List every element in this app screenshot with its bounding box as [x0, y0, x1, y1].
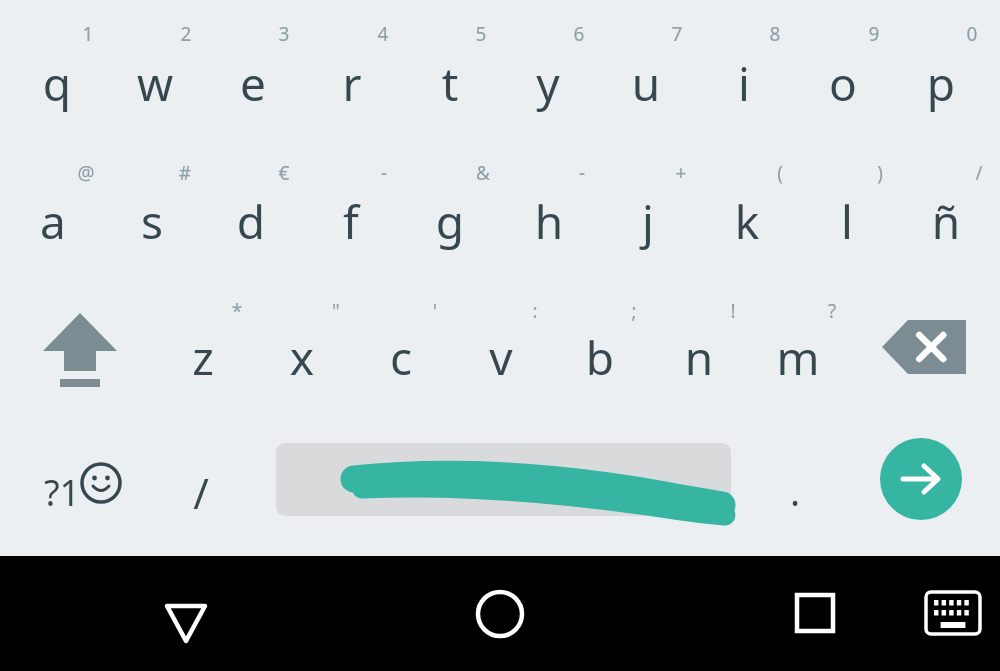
staticText: x	[202, 326, 402, 389]
staticText: 9	[774, 21, 974, 47]
staticText: e	[153, 52, 353, 115]
staticText: w	[55, 52, 255, 115]
staticText: €	[184, 160, 384, 186]
staticText: c	[301, 326, 501, 389]
button[interactable]	[551, 286, 650, 412]
staticText: ñ	[846, 190, 1000, 253]
button[interactable]	[162, 440, 244, 540]
staticText: '	[335, 298, 535, 324]
staticText: -	[482, 160, 682, 186]
staticText: )	[780, 160, 980, 186]
button[interactable]	[749, 286, 848, 412]
staticText: d	[151, 190, 351, 253]
button[interactable]	[352, 286, 451, 412]
button[interactable]: Home	[467, 581, 533, 647]
button[interactable]: Back	[152, 580, 220, 646]
button[interactable]	[154, 286, 253, 412]
staticText: q	[0, 52, 157, 115]
button[interactable]	[499, 6, 597, 132]
button[interactable]	[452, 286, 551, 412]
button[interactable]: Space	[276, 443, 731, 516]
button[interactable]	[897, 146, 996, 272]
button[interactable]	[698, 146, 797, 272]
staticText: ?	[732, 298, 932, 324]
staticText: 1	[0, 21, 188, 47]
staticText: +	[581, 160, 781, 186]
staticText: ?1	[0, 468, 162, 517]
staticText: v	[401, 326, 601, 389]
staticText: o	[743, 52, 943, 115]
button[interactable]: Switch keyboard	[922, 588, 984, 638]
staticText: 8	[675, 21, 875, 47]
staticText: -	[284, 160, 484, 186]
staticText: #	[85, 160, 285, 186]
staticText: *	[137, 298, 337, 324]
button[interactable]	[597, 6, 695, 132]
staticText: /	[101, 464, 301, 521]
staticText: i	[644, 52, 844, 115]
staticText: l	[747, 190, 947, 253]
staticText: 7	[577, 21, 777, 47]
staticText: !	[633, 298, 833, 324]
staticText: p	[841, 52, 1000, 115]
button[interactable]	[892, 6, 990, 132]
staticText: t	[350, 52, 550, 115]
staticText: h	[449, 190, 649, 253]
staticText: :	[435, 298, 635, 324]
staticText: g	[350, 190, 550, 253]
staticText: r	[252, 52, 452, 115]
staticText: n	[599, 326, 799, 389]
staticText: s	[52, 190, 252, 253]
button[interactable]	[253, 286, 352, 412]
button[interactable]	[303, 6, 401, 132]
staticText: 2	[86, 21, 286, 47]
button[interactable]: Backspace	[882, 316, 970, 378]
button[interactable]: Enter	[880, 438, 962, 520]
staticText: (	[680, 160, 880, 186]
button[interactable]	[794, 6, 892, 132]
button[interactable]	[4, 146, 103, 272]
staticText: y	[448, 52, 648, 115]
button[interactable]: Symbols and emoji	[18, 440, 148, 540]
button[interactable]	[757, 443, 835, 538]
button[interactable]	[500, 146, 599, 272]
staticText: 3	[184, 21, 384, 47]
staticText: z	[103, 326, 303, 389]
staticText: "	[236, 298, 436, 324]
button[interactable]	[204, 6, 302, 132]
staticText: @	[0, 160, 186, 186]
button[interactable]	[798, 146, 897, 272]
staticText: /	[879, 160, 1000, 186]
button[interactable]	[8, 6, 106, 132]
button[interactable]	[401, 146, 500, 272]
staticText: 6	[479, 21, 679, 47]
button[interactable]: Shift	[20, 295, 140, 395]
staticText: f	[251, 190, 451, 253]
staticText: u	[546, 52, 746, 115]
staticText: m	[698, 326, 898, 389]
button[interactable]	[650, 286, 749, 412]
staticText: 4	[283, 21, 483, 47]
staticText: a	[0, 190, 153, 253]
button[interactable]	[401, 6, 499, 132]
staticText: 0	[872, 21, 1000, 47]
button[interactable]	[103, 146, 202, 272]
staticText: &	[383, 160, 583, 186]
button[interactable]: Recents	[782, 581, 848, 647]
staticText: 5	[381, 21, 581, 47]
button[interactable]	[695, 6, 793, 132]
staticText: .	[695, 465, 895, 517]
staticText: j	[548, 190, 748, 253]
button[interactable]	[202, 146, 301, 272]
button[interactable]	[599, 146, 698, 272]
staticText: k	[647, 190, 847, 253]
button[interactable]	[302, 146, 401, 272]
staticText: b	[500, 326, 700, 389]
staticText: ;	[534, 298, 734, 324]
button[interactable]	[106, 6, 204, 132]
